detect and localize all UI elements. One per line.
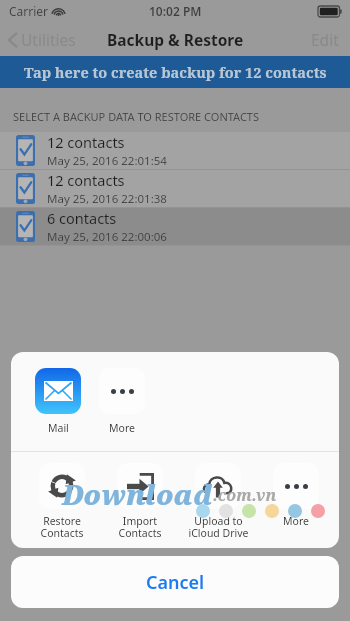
staticText: 12 contacts xyxy=(47,132,125,152)
staticText: 10:02 PM xyxy=(149,3,202,19)
button[interactable]: Import Contacts xyxy=(101,463,179,540)
staticText: More xyxy=(109,421,135,435)
button[interactable]: Upload to iCloud Drive xyxy=(179,463,257,540)
staticText: Import Contacts xyxy=(118,514,162,540)
button[interactable]: Mail xyxy=(35,368,81,435)
button[interactable]: More xyxy=(257,463,335,528)
staticText: SELECT A BACKUP DATA TO RESTORE CONTACTS xyxy=(13,109,260,124)
staticText: 12 contacts xyxy=(47,170,125,190)
staticText: Carrier xyxy=(9,3,49,19)
staticText: Upload to iCloud Drive xyxy=(188,514,249,540)
staticText: More xyxy=(283,514,309,528)
button[interactable]: Edit xyxy=(300,24,350,55)
button[interactable]: Restore Contacts xyxy=(23,463,101,540)
button[interactable]: More xyxy=(99,368,145,435)
staticText: .com xyxy=(213,484,252,506)
staticText: Tap here to create backup for 12 contact… xyxy=(24,62,327,82)
staticText: Restore Contacts xyxy=(40,514,84,540)
staticText: 6 contacts xyxy=(47,208,117,228)
staticText: Backup & Restore xyxy=(107,29,244,50)
button[interactable]: Tap here to create backup for 12 contact… xyxy=(0,56,350,88)
staticText: May 25, 2016 22:01:54 xyxy=(47,153,167,169)
staticText: Mail xyxy=(48,421,69,435)
staticText: Cancel xyxy=(146,570,205,595)
button[interactable]: Cancel xyxy=(11,556,339,608)
staticText: Edit xyxy=(311,29,339,50)
staticText: .vn xyxy=(252,484,277,506)
staticText: Download xyxy=(62,476,213,513)
staticText: May 25, 2016 22:01:38 xyxy=(47,191,167,207)
button[interactable]: Utilities xyxy=(0,25,86,54)
staticText: May 25, 2016 22:00:06 xyxy=(47,229,167,245)
staticText: Utilities xyxy=(21,29,76,50)
button[interactable]: 12 contacts xyxy=(0,132,350,169)
button[interactable]: 6 contacts xyxy=(0,208,350,245)
button[interactable]: 12 contacts xyxy=(0,170,350,207)
